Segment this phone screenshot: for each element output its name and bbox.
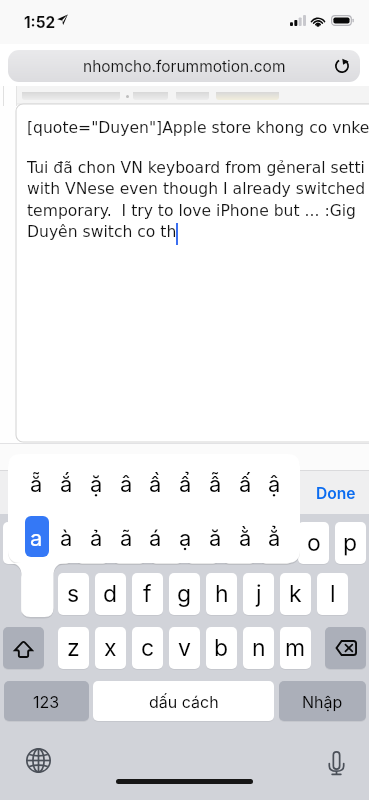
staticText: ă [209,525,222,552]
button[interactable]: v [169,627,200,669]
staticText: ấ [239,471,252,498]
button[interactable]: Nhập [279,681,366,721]
button[interactable]: u [224,522,255,564]
staticText: ặ [90,471,103,498]
staticText: ẳ [268,525,281,552]
button[interactable]: w [40,522,71,564]
staticText: [quote="Duyen"]Apple store khong co vnke [27,119,369,137]
staticText: 1:52 [24,13,56,32]
button[interactable] [176,92,209,100]
staticText: i [274,529,280,557]
staticText: f [143,580,152,608]
staticText: â [120,471,133,498]
staticText: ằ [239,525,252,552]
button[interactable]: o [298,522,329,564]
staticText: ẵ [30,471,43,498]
staticText: ậ [268,471,281,498]
staticText: à [60,525,73,552]
staticText: Nhập [302,692,343,711]
button[interactable]: Numbers [4,681,89,721]
button[interactable]: q [3,522,34,564]
staticText: g [177,580,192,608]
button[interactable]: n [243,627,274,669]
staticText: nhomcho.forummotion.com [83,57,286,76]
staticText: x [104,634,117,662]
button[interactable]: dấu cách [93,681,274,721]
staticText: ẫ [209,471,222,498]
staticText: o [307,529,321,557]
button[interactable] [22,92,120,100]
button[interactable]: z [58,627,89,669]
button[interactable]: Delete [325,627,366,669]
button[interactable]: Change keyboard [24,746,53,775]
button[interactable]: l [317,573,348,615]
staticText: v [178,634,191,662]
button[interactable]: nhomcho.forummotion.com [8,50,360,82]
staticText: q [11,529,26,557]
staticText: d [103,580,118,608]
button[interactable]: y [187,522,218,564]
staticText: á [149,525,162,552]
button[interactable]: h [206,573,237,615]
button[interactable]: e [77,522,108,564]
staticText: ầ [149,471,162,498]
button[interactable]: c [132,627,163,669]
staticText: m [285,634,306,662]
button[interactable]: r [114,522,145,564]
staticText: ẩ [179,471,192,498]
staticText: Duyên switch co th [27,223,177,241]
staticText: with VNese even though I already switche… [27,180,366,198]
staticText: w [46,529,65,557]
button[interactable]: f [132,573,163,615]
staticText: s [67,580,80,608]
button[interactable]: d [95,573,126,615]
staticText: temporary. I try to love iPhone but ... … [27,202,356,220]
staticText: e [86,529,100,557]
button[interactable] [216,92,279,100]
staticText: ả [90,525,103,552]
button[interactable]: Dictate [322,749,350,777]
button[interactable]: g [169,573,200,615]
staticText: 123 [33,692,60,711]
button[interactable]: p [335,522,366,564]
staticText: ã [120,525,133,552]
staticText: k [289,580,302,608]
staticText: a [30,525,43,552]
button[interactable]: a [25,516,49,557]
button[interactable]: t [151,522,182,564]
staticText: b [214,634,229,662]
button[interactable]: x [95,627,126,669]
button[interactable]: j [243,573,274,615]
button[interactable]: Done [310,470,362,514]
staticText: Done [316,484,356,503]
button[interactable]: Reload page [329,53,355,79]
staticText: ắ [60,471,73,498]
button[interactable]: a [21,573,52,615]
staticText: ạ [179,525,192,552]
staticText: dấu cách [149,692,219,711]
button[interactable]: s [58,573,89,615]
staticText: c [141,634,155,662]
staticText: p [343,529,358,557]
staticText: Tui đã chon VN keyboard from gẻneral set… [27,159,365,177]
button[interactable]: Shift [3,627,44,669]
button[interactable]: i [261,522,292,564]
staticText: z [67,634,80,662]
button[interactable] [133,92,168,100]
staticText: j [256,580,262,608]
button[interactable]: m [280,627,311,669]
staticText: r [125,529,134,557]
staticText: h [215,580,229,608]
staticText: l [330,580,336,608]
staticText: u [233,529,247,557]
button[interactable]: b [206,627,237,669]
button[interactable]: k [280,573,311,615]
staticText: n [252,634,266,662]
